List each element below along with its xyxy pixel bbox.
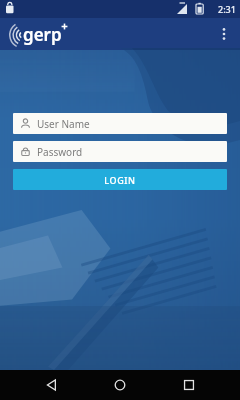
staticText: LOGIN: [104, 174, 136, 186]
button[interactable]: Recent apps: [172, 370, 206, 400]
button[interactable]: Home: [103, 370, 137, 400]
button[interactable]: More options: [208, 18, 240, 50]
staticText: 2:31: [218, 3, 236, 15]
staticText: User Name: [37, 117, 90, 131]
button[interactable]: LOGIN: [13, 169, 227, 190]
button[interactable]: User Name: [13, 113, 227, 134]
button[interactable]: Back: [35, 370, 69, 400]
button[interactable]: Password: [13, 141, 227, 162]
staticText: Password: [37, 145, 83, 159]
staticText: gerp: [23, 23, 62, 46]
